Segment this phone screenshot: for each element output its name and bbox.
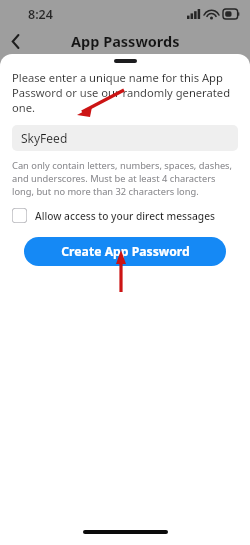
button[interactable]: Create App Password [24, 237, 226, 266]
staticText: Please enter a unique name for this App … [12, 70, 238, 115]
button[interactable]: Allow access to your direct messages [12, 208, 238, 223]
staticText: 8:24 [28, 6, 53, 23]
staticText: SkyFeed [21, 130, 68, 146]
staticText: Create App Password [61, 243, 190, 260]
staticText: Allow access to your direct messages [35, 209, 215, 223]
button[interactable]: SkyFeed [12, 125, 238, 151]
button[interactable]: Back [0, 28, 30, 54]
staticText: App Passwords [71, 31, 180, 51]
staticText: Can only contain letters, numbers, space… [12, 159, 238, 198]
